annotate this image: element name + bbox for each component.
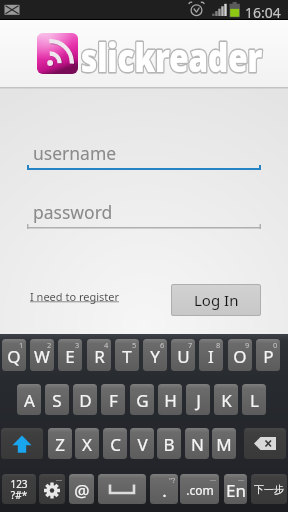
- staticText: 8: [216, 340, 221, 350]
- button[interactable]: Q: [2, 339, 26, 371]
- button[interactable]: En: [224, 474, 247, 504]
- button[interactable]: O: [228, 339, 252, 371]
- staticText: P: [263, 345, 274, 368]
- staticText: J: [196, 389, 201, 412]
- button[interactable]: J: [186, 384, 210, 415]
- staticText: W: [34, 345, 50, 368]
- staticText: 7: [188, 340, 193, 350]
- staticText: A: [24, 389, 35, 412]
- staticText: Y: [150, 345, 160, 368]
- staticText: ···: [238, 475, 245, 485]
- staticText: password: [33, 200, 113, 224]
- button[interactable]: D: [73, 384, 97, 415]
- button[interactable]: Y: [143, 339, 167, 371]
- button[interactable]: Settings: [39, 474, 65, 504]
- button[interactable]: Backspace: [244, 428, 286, 459]
- staticText: slickreader: [81, 31, 262, 83]
- staticText: Q: [7, 345, 21, 368]
- staticText: H: [164, 389, 177, 412]
- staticText: Z: [55, 433, 65, 456]
- staticText: M: [216, 433, 232, 456]
- button[interactable]: Shift: [1, 428, 43, 459]
- button[interactable]: F: [101, 384, 125, 415]
- button[interactable]: B: [157, 428, 181, 459]
- staticText: 9: [245, 340, 250, 350]
- button[interactable]: U: [171, 339, 195, 371]
- button[interactable]: H: [158, 384, 182, 415]
- staticText: E: [65, 345, 75, 368]
- staticText: O: [233, 345, 247, 368]
- button[interactable]: password: [27, 199, 261, 229]
- staticText: I need to register: [30, 289, 120, 304]
- staticText: En: [226, 479, 246, 502]
- button[interactable]: S: [45, 384, 69, 415]
- button[interactable]: @: [69, 474, 94, 504]
- staticText: 123 ?#*: [10, 477, 28, 502]
- staticText: I: [208, 345, 214, 368]
- button[interactable]: .com: [180, 474, 219, 504]
- button[interactable]: C: [103, 428, 127, 459]
- staticText: slickreader: [81, 31, 262, 83]
- staticText: .: [162, 479, 167, 502]
- staticText: 4: [104, 340, 109, 350]
- button[interactable]: username: [27, 140, 261, 170]
- button[interactable]: Space: [98, 474, 146, 504]
- staticText: 2: [47, 340, 52, 350]
- button[interactable]: L: [242, 384, 266, 415]
- button[interactable]: 下一步: [251, 474, 287, 504]
- staticText: 6: [160, 340, 165, 350]
- staticText: F: [109, 389, 118, 412]
- button[interactable]: .: [150, 474, 178, 504]
- staticText: 16:04: [245, 3, 281, 22]
- staticText: 1: [19, 340, 24, 350]
- staticText: T: [122, 345, 132, 368]
- staticText: 下一步: [254, 483, 284, 496]
- staticText: username: [33, 141, 117, 165]
- button[interactable]: M: [212, 428, 236, 459]
- staticText: Log In: [194, 290, 239, 310]
- button[interactable]: E: [58, 339, 82, 371]
- staticText: D: [79, 389, 92, 412]
- button[interactable]: N: [185, 428, 209, 459]
- staticText: ···: [210, 475, 217, 485]
- staticText: B: [163, 433, 175, 456]
- staticText: L: [250, 389, 259, 412]
- staticText: C: [110, 433, 121, 456]
- button[interactable]: V: [130, 428, 154, 459]
- button[interactable]: R: [87, 339, 111, 371]
- staticText: S: [52, 389, 62, 412]
- staticText: "?: [169, 475, 176, 485]
- staticText: R: [94, 345, 105, 368]
- button[interactable]: T: [115, 339, 139, 371]
- staticText: U: [177, 345, 190, 368]
- staticText: ···: [56, 475, 63, 485]
- staticText: X: [82, 433, 92, 456]
- staticText: K: [221, 389, 232, 412]
- staticText: V: [137, 433, 148, 456]
- button[interactable]: X: [75, 428, 99, 459]
- button[interactable]: Log In: [171, 284, 261, 316]
- staticText: 0: [273, 340, 278, 350]
- button[interactable]: Z: [48, 428, 72, 459]
- button[interactable]: P: [256, 339, 280, 371]
- staticText: G: [136, 389, 149, 412]
- staticText: 3: [75, 340, 80, 350]
- button[interactable]: W: [30, 339, 54, 371]
- staticText: 5: [132, 340, 137, 350]
- button[interactable]: I: [199, 339, 223, 371]
- button[interactable]: I need to register: [26, 285, 124, 308]
- button[interactable]: G: [130, 384, 154, 415]
- staticText: @: [74, 479, 90, 502]
- button[interactable]: K: [214, 384, 238, 415]
- button[interactable]: A: [17, 384, 41, 415]
- staticText: N: [191, 433, 204, 456]
- button[interactable]: 123 ?#*: [2, 474, 36, 504]
- staticText: .com: [186, 482, 214, 498]
